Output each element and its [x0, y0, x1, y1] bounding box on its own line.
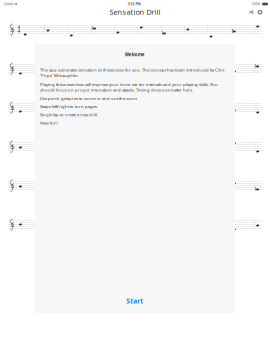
staticText: 100% [252, 2, 261, 6]
staticText: Swipe left/right to turn pages. [40, 104, 98, 109]
staticText: Start [126, 297, 143, 305]
staticText: Single tap to create a new drill. [40, 112, 98, 117]
staticText: Use pinch gestures to zoom in and out th… [40, 95, 137, 101]
staticText: Playing these exercises will improve you… [40, 81, 218, 93]
staticText: This app generates sensation drill exerc… [40, 67, 224, 78]
staticText: Have fun! [40, 120, 58, 126]
button[interactable]: Start [34, 294, 235, 308]
button[interactable]: Shuffle [247, 8, 255, 16]
staticText: Carrier [4, 2, 14, 6]
button[interactable]: Settings [256, 8, 264, 17]
staticText: 3:52 PM [127, 2, 140, 6]
staticText: Sensation Drill [109, 7, 160, 17]
staticText: Welcome [125, 51, 145, 57]
